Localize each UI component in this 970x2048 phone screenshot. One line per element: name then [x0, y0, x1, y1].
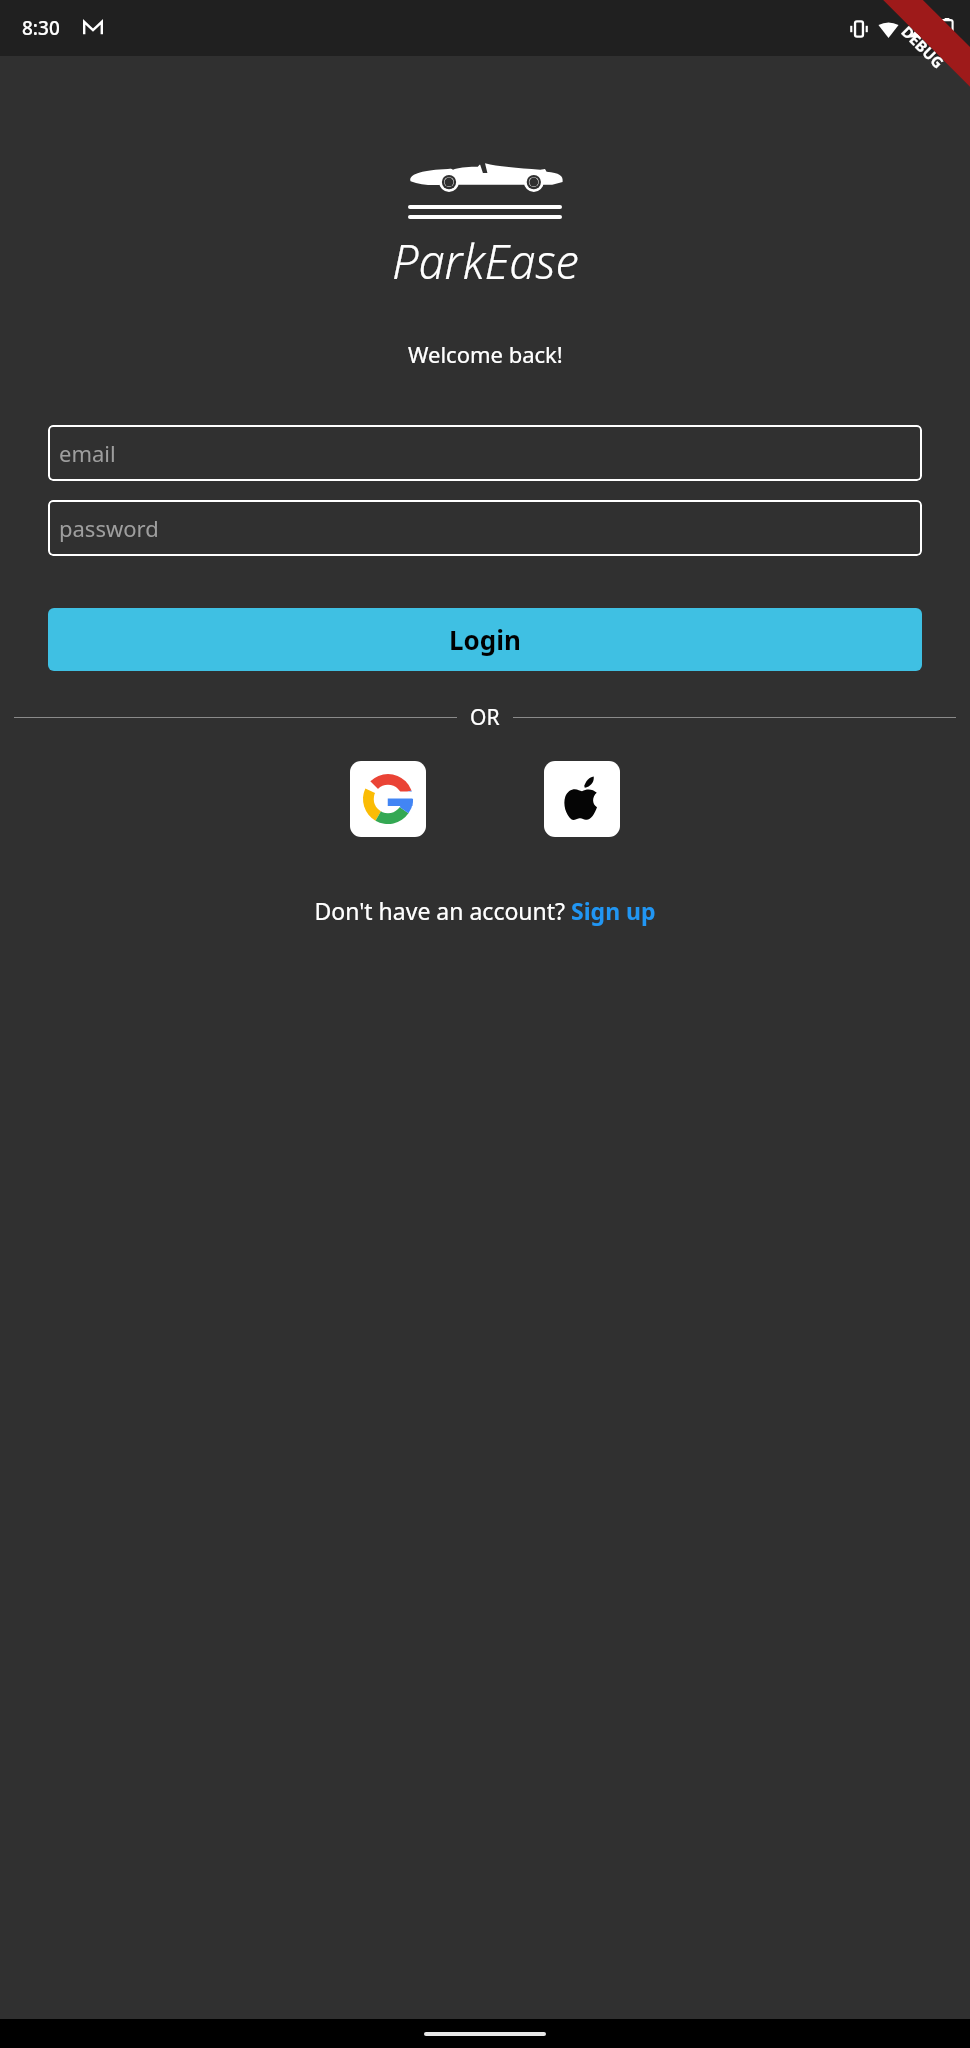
button[interactable]: email [48, 425, 922, 481]
staticText: Don't have an account? Sign up [314, 895, 656, 926]
button[interactable]: Don't have an account? Sign up [308, 889, 662, 932]
staticText: OR [470, 703, 500, 732]
staticText: 8:30 [22, 15, 60, 41]
staticText: Welcome back! [408, 339, 563, 369]
button[interactable]: Login [48, 608, 922, 671]
button[interactable]: Sign in with Google [350, 761, 426, 837]
staticText: ParkEase [392, 229, 579, 293]
button[interactable]: Sign in with Apple [544, 761, 620, 837]
staticText: password [59, 513, 159, 543]
button[interactable]: password [48, 500, 922, 556]
staticText: email [59, 438, 116, 468]
staticText: Login [449, 622, 521, 657]
staticText: DEBUG [897, 21, 948, 72]
